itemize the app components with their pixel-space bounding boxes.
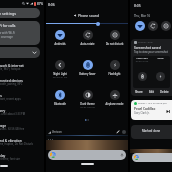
staticText: Game: [151, 57, 170, 60]
staticText: System • now: [138, 41, 153, 44]
button[interactable]: Auto-rotate: [74, 28, 101, 58]
button[interactable]: Battery Saver: [74, 58, 101, 88]
staticText: Flashlight: [101, 72, 128, 76]
staticText: Thu, Mar 16: [134, 14, 151, 18]
staticText: Auto-rotate: [74, 42, 101, 46]
staticText: Share: [135, 90, 143, 94]
button[interactable]: Display: [0, 149, 44, 164]
staticText: On at 7:21 PM: [46, 76, 74, 79]
button[interactable]: Androids: [46, 28, 74, 58]
staticText: Edit: [149, 90, 155, 94]
staticText: Bluetooth, pairing, NFC: [0, 82, 23, 86]
staticText: Use Wi-Fi for calls: [0, 23, 16, 28]
staticText: On at 7:21 PM: [133, 60, 151, 63]
staticText: 8:06: [48, 2, 55, 7]
button[interactable]: Sound & vibration: [0, 134, 44, 149]
button[interactable]: Flashlight: [101, 58, 128, 88]
button[interactable]: Spotify • 10:2 Im Good (Blu: [131, 100, 172, 120]
staticText: Network & internet: [0, 63, 24, 67]
button[interactable]: Apps: [0, 89, 44, 104]
staticText: Bluetooth: [46, 102, 74, 106]
button[interactable]: Auto rotate: [148, 21, 158, 31]
button[interactable]: Do not disturb: [101, 28, 128, 58]
staticText: 50% used - 63.56 GB free: [0, 127, 25, 131]
staticText: Do not disturb: [101, 42, 128, 46]
button[interactable]: Storage: [0, 119, 44, 134]
staticText: Night Light: [46, 72, 74, 76]
staticText: Sound & vibration: [0, 138, 22, 142]
staticText: Night Light: [133, 57, 151, 60]
staticText: Search settings: [0, 11, 17, 16]
button[interactable]: Dark theme: [74, 88, 101, 118]
button[interactable]: Airplane mode: [101, 88, 128, 118]
button[interactable]: Expand: [0, 47, 40, 58]
button[interactable]: Marked done: [131, 125, 172, 139]
button[interactable]: Delete: [158, 88, 171, 96]
button[interactable]: Bluetooth: [46, 88, 74, 118]
staticText: Assistant, recent apps: [0, 97, 21, 101]
staticText: Gary Clark Jr.: [134, 111, 150, 115]
button[interactable]: Network & internet: [0, 59, 44, 74]
staticText: Androids: [46, 42, 74, 46]
staticText: Volume, haptics, Do Not Disturb: [0, 142, 34, 146]
other: Edit: [116, 130, 120, 134]
staticText: Connected devices: [0, 78, 23, 82]
staticText: 87%: [37, 2, 43, 6]
button[interactable]: Night Light: [46, 58, 74, 88]
button[interactable]: System • now: [131, 39, 172, 96]
staticText: 8:05: [134, 3, 141, 8]
staticText: Apps: [0, 93, 2, 97]
staticText: Dark theme: [74, 102, 101, 106]
staticText: Screenshot saved: [134, 46, 161, 50]
button[interactable]: Battery: [0, 104, 44, 119]
button[interactable]: Edit: [145, 88, 158, 96]
staticText: Pearl Cadillac: [134, 107, 156, 111]
button[interactable]: Search settings: [0, 8, 40, 18]
staticText: 72% - until about 3:33 PM: [0, 112, 26, 116]
staticText: Spotify • 10:2 Im Good (Blu: [138, 102, 167, 105]
staticText: Storage: [0, 123, 7, 127]
other: Next track: [166, 109, 171, 114]
staticText: Airplane mode: [101, 102, 128, 106]
staticText: Verizon: [52, 130, 62, 134]
staticText: Mobile, Wi-Fi, hotspot: [0, 67, 21, 71]
button[interactable]: [132, 153, 172, 162]
staticText: Battery Saver: [74, 72, 101, 76]
staticText: Display: [0, 153, 6, 157]
button[interactable]: Do not disturb: [161, 21, 171, 31]
button[interactable]: [48, 150, 126, 160]
button[interactable]: Settings: [122, 130, 126, 134]
staticText: Phone sound: [78, 13, 100, 18]
staticText: Tap to view your screenshot: [134, 50, 168, 54]
staticText: to extend coverage: [0, 35, 13, 39]
staticText: Battery: [0, 108, 6, 112]
button[interactable]: Connected devices: [0, 74, 44, 89]
staticText: Make calls with Wi-Fi: [0, 31, 16, 35]
staticText: On at 7:30 PM: [74, 106, 101, 109]
staticText: Marked done: [142, 129, 161, 133]
button[interactable]: Wi-Fi: [135, 21, 145, 31]
staticText: Dark theme, font size: [0, 157, 21, 161]
button[interactable]: Share: [132, 88, 145, 96]
button[interactable]: Use Wi-Fi for calls: [0, 21, 40, 45]
staticText: Delete: [160, 90, 169, 94]
other: Expand: [32, 50, 37, 55]
